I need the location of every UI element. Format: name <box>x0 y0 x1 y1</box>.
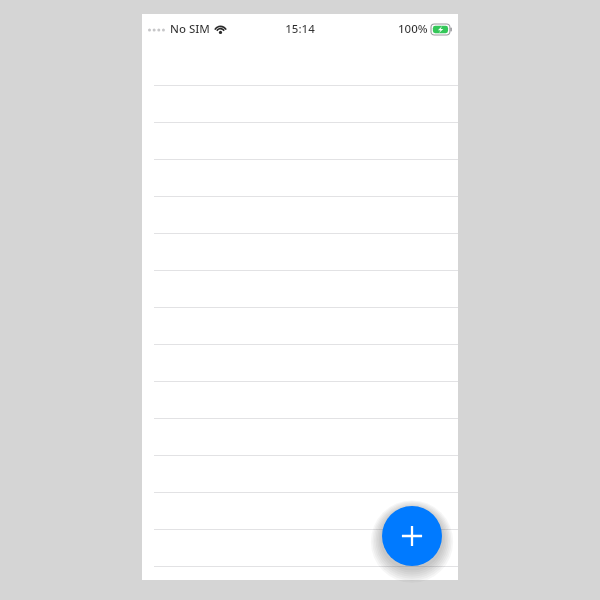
button[interactable] <box>142 530 458 567</box>
button[interactable] <box>142 160 458 197</box>
button[interactable] <box>142 271 458 308</box>
button[interactable] <box>142 456 458 493</box>
button[interactable] <box>142 123 458 160</box>
button[interactable] <box>142 49 458 86</box>
button[interactable] <box>142 308 458 345</box>
staticText: 15:14 <box>285 21 315 37</box>
other: Wi-Fi <box>214 24 227 34</box>
button[interactable] <box>142 197 458 234</box>
button[interactable]: Add <box>382 506 442 566</box>
other: Battery full, charging <box>431 24 453 35</box>
button[interactable] <box>142 382 458 419</box>
staticText: No SIM <box>170 21 210 37</box>
staticText: 100% <box>398 21 428 37</box>
button[interactable] <box>142 234 458 271</box>
button[interactable] <box>142 86 458 123</box>
button[interactable] <box>142 345 458 382</box>
button[interactable] <box>142 419 458 456</box>
button[interactable] <box>142 493 458 530</box>
